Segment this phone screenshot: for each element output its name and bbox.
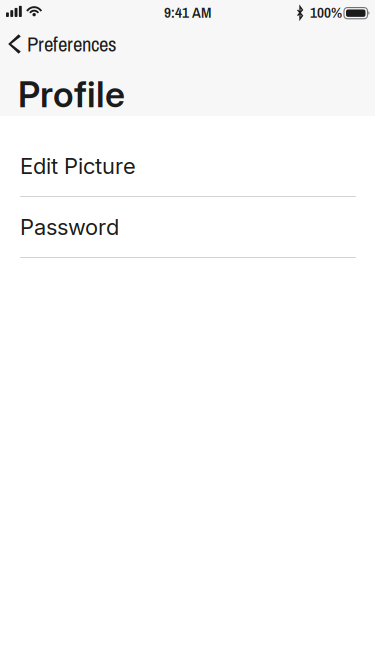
button[interactable]: Preferences — [0, 27, 180, 61]
button[interactable]: Password — [0, 197, 375, 258]
staticText: Edit Picture — [20, 153, 136, 179]
staticText: Password — [20, 214, 119, 240]
staticText: Profile — [18, 73, 125, 116]
staticText: 9:41 AM — [164, 2, 211, 23]
button[interactable]: Edit Picture — [0, 136, 375, 197]
staticText: 100% — [310, 2, 342, 23]
staticText: Preferences — [27, 30, 116, 58]
